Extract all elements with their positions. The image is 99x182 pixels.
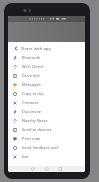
button[interactable]: Send to devices (8, 125, 85, 134)
staticText: Send feedback mail (22, 145, 59, 150)
staticText: Exit (22, 154, 29, 159)
button[interactable]: Bluetooth (8, 53, 85, 62)
staticText: Messages (22, 82, 41, 87)
staticText: Drive link (22, 73, 40, 78)
staticText: Send to devices (22, 127, 52, 132)
staticText: Contacts (22, 100, 39, 105)
button[interactable]: Drive link (8, 71, 85, 80)
staticText: Nearby Share (22, 118, 48, 123)
button[interactable]: Send feedback mail (8, 143, 85, 152)
staticText: Wi-Fi Direct (22, 64, 44, 69)
staticText: Bluetooth (22, 55, 41, 60)
staticText: Print now (22, 136, 41, 141)
button[interactable]: Contacts (8, 98, 85, 107)
other: Back (13, 46, 18, 51)
button[interactable]: Wi-Fi Direct (8, 62, 85, 71)
button[interactable]: Exit (8, 152, 85, 161)
button[interactable]: Copy to clip (8, 89, 85, 98)
button[interactable]: Nearby Share (8, 116, 85, 125)
staticText: Copy to clip (22, 91, 44, 96)
button[interactable]: Back (8, 43, 85, 53)
button[interactable]: Duo invite (8, 107, 85, 116)
button[interactable]: Print now (8, 134, 85, 143)
staticText: Share with app (21, 45, 52, 51)
button[interactable]: Messages (8, 80, 85, 89)
staticText: Duo invite (22, 109, 42, 114)
